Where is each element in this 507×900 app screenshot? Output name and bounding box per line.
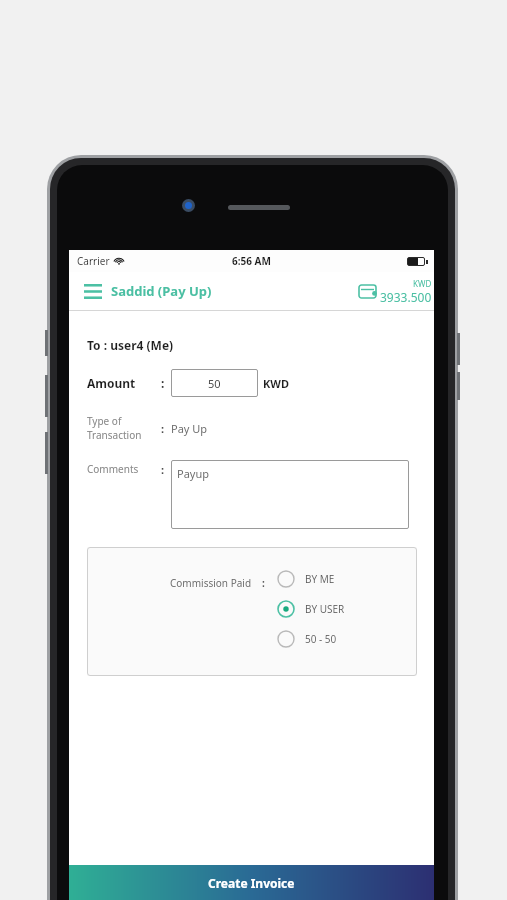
button[interactable]: Payup xyxy=(171,460,409,529)
staticText: KWD xyxy=(413,278,432,289)
staticText: : xyxy=(161,375,165,391)
staticText: BY USER xyxy=(305,602,345,616)
button[interactable]: Create Invoice xyxy=(69,865,434,900)
staticText: Create Invoice xyxy=(208,875,295,891)
staticText: Commission Paid xyxy=(170,576,252,590)
button[interactable]: Wallet balance xyxy=(358,278,432,305)
staticText: Transaction xyxy=(87,428,142,442)
staticText: Comments xyxy=(87,462,139,476)
staticText: : xyxy=(262,576,265,590)
staticText: 6:56 AM xyxy=(232,254,271,268)
button[interactable]: BY USER xyxy=(277,600,349,618)
staticText: Amount xyxy=(87,375,136,391)
button[interactable]: Menu xyxy=(82,282,104,301)
staticText: Type of xyxy=(87,414,122,428)
staticText: To : user4 (Me) xyxy=(87,337,174,353)
button[interactable]: 50 xyxy=(171,369,258,397)
staticText: 50 - 50 xyxy=(305,632,337,646)
staticText: Saddid (Pay Up) xyxy=(111,282,212,300)
staticText: : xyxy=(161,462,165,477)
button[interactable]: 50 - 50 xyxy=(277,630,341,648)
staticText: BY ME xyxy=(305,572,335,586)
staticText: Pay Up xyxy=(171,421,208,436)
staticText: 50 xyxy=(208,376,221,391)
staticText: : xyxy=(161,421,165,436)
staticText: KWD xyxy=(263,376,289,391)
staticText: Carrier xyxy=(77,254,110,268)
staticText: Payup xyxy=(177,466,209,481)
staticText: 3933.500 xyxy=(380,289,432,305)
button[interactable]: BY ME xyxy=(277,570,339,588)
